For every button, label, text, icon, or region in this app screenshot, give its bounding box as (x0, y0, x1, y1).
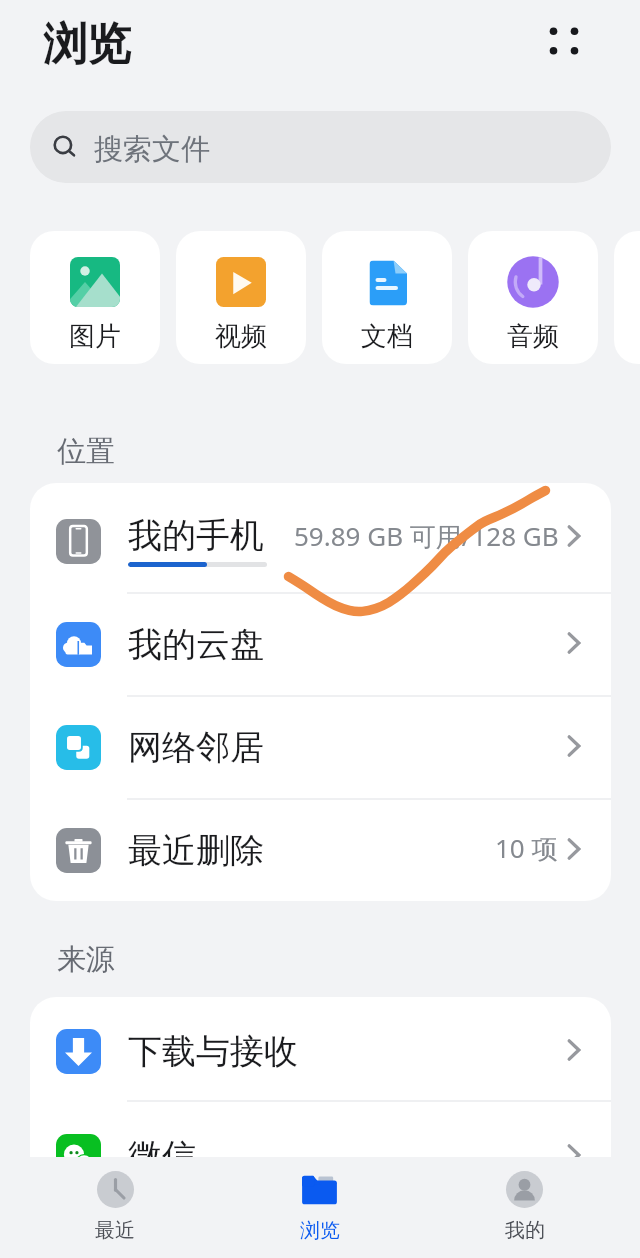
staticText: 59.89 GB 可用/128 GB (294, 518, 559, 554)
staticText: 最近 (95, 1218, 135, 1243)
button[interactable]: 最近删除 (30, 800, 611, 901)
staticText: 搜索文件 (94, 131, 210, 168)
staticText: 我的手机 (128, 514, 264, 557)
staticText: 最近删除 (128, 829, 264, 872)
staticText: 我的云盘 (128, 623, 264, 666)
button[interactable]: 最近 (13, 1157, 217, 1258)
button[interactable]: 微信 (30, 1102, 611, 1205)
staticText: 音频 (507, 320, 559, 353)
staticText: 位置 (57, 433, 115, 470)
staticText: 浏览 (43, 17, 131, 72)
button[interactable]: 下载与接收 (30, 997, 611, 1100)
staticText: 浏览 (300, 1218, 340, 1243)
button[interactable]: 视频 (176, 231, 306, 364)
button[interactable]: 我的 (422, 1157, 627, 1258)
button[interactable]: 搜索文件 (30, 111, 611, 183)
staticText: 图片 (69, 320, 121, 353)
staticText: 网络邻居 (128, 726, 264, 769)
staticText: 微信 (128, 1135, 196, 1178)
button[interactable]: 图片 (30, 231, 160, 364)
staticText: 文档 (361, 320, 413, 353)
staticText: 下载与接收 (128, 1030, 298, 1073)
button[interactable]: 音频 (468, 231, 598, 364)
staticText: 我的 (505, 1218, 545, 1243)
button[interactable]: 文档 (322, 231, 452, 364)
button[interactable]: 网络邻居 (30, 697, 611, 798)
staticText: 视频 (215, 320, 267, 353)
staticText: 来源 (57, 941, 115, 978)
staticText: 10 项 (495, 830, 558, 866)
button[interactable]: 我的云盘 (30, 594, 611, 695)
button[interactable]: 浏览 (217, 1157, 422, 1258)
button[interactable]: 我的手机 (30, 483, 611, 592)
button[interactable]: More options (538, 16, 590, 68)
